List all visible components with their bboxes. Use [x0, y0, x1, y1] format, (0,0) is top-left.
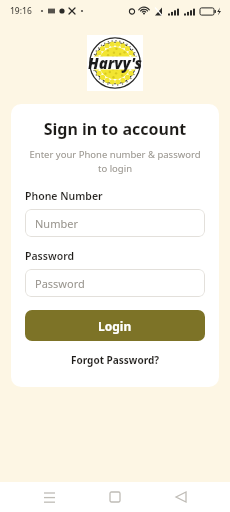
- button[interactable]: Recents: [32, 482, 66, 512]
- button[interactable]: Home: [98, 482, 132, 512]
- button[interactable]: Back: [164, 482, 198, 512]
- button[interactable]: Number: [25, 209, 205, 237]
- staticText: 19:16: [10, 5, 32, 17]
- button[interactable]: Login: [25, 310, 205, 341]
- staticText: Harvy's: [88, 53, 142, 73]
- staticText: Password: [25, 249, 75, 263]
- staticText: Phone Number: [25, 189, 103, 203]
- staticText: Password: [35, 276, 85, 291]
- button[interactable]: Forgot Password?: [25, 353, 205, 367]
- button[interactable]: Password: [25, 269, 205, 297]
- staticText: Sign in to account: [25, 118, 205, 140]
- staticText: Number: [35, 216, 78, 231]
- staticText: Forgot Password?: [71, 353, 160, 367]
- staticText: Login: [98, 318, 132, 334]
- staticText: Enter your Phone number & password to lo…: [29, 148, 201, 175]
